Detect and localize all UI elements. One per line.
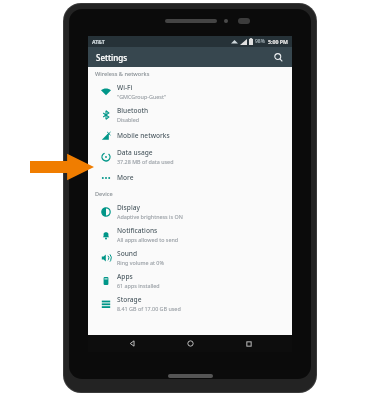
staticText: Bluetooth <box>117 106 149 115</box>
button[interactable]: Mobile networks <box>88 126 292 145</box>
staticText: Notifications <box>117 226 158 235</box>
button[interactable]: Recent apps <box>234 335 264 352</box>
button[interactable]: Sound <box>88 246 292 269</box>
button[interactable]: Storage <box>88 292 292 315</box>
button[interactable]: Apps <box>88 269 292 292</box>
staticText: "GMCGroup-Guest" <box>117 93 167 100</box>
staticText: Settings <box>96 52 128 63</box>
staticText: Data usage <box>117 148 153 157</box>
button[interactable]: Display <box>88 200 292 223</box>
staticText: Apps <box>117 272 133 281</box>
staticText: 61 apps installed <box>117 282 160 289</box>
staticText: Disabled <box>117 116 139 123</box>
staticText: Mobile networks <box>117 131 170 140</box>
staticText: 98% <box>255 38 265 45</box>
button[interactable]: Notifications <box>88 223 292 246</box>
button[interactable]: Data usage <box>88 145 292 168</box>
button[interactable]: Back <box>117 335 147 352</box>
staticText: 5:00 PM <box>268 38 288 45</box>
staticText: All apps allowed to send <box>117 236 179 243</box>
staticText: Sound <box>117 249 138 258</box>
staticText: Wireless & networks <box>95 70 150 78</box>
staticText: 8.41 GB of 17.00 GB used <box>117 305 181 312</box>
staticText: Display <box>117 203 140 212</box>
staticText: Adaptive brightness is ON <box>117 213 183 220</box>
button[interactable]: More <box>88 168 292 187</box>
staticText: Storage <box>117 295 142 304</box>
staticText: Device <box>95 190 113 198</box>
button[interactable]: Search <box>271 50 285 64</box>
button[interactable]: Home <box>175 335 205 352</box>
staticText: More <box>117 173 134 182</box>
button[interactable]: Bluetooth <box>88 103 292 126</box>
staticText: Ring volume at 0% <box>117 259 164 266</box>
button[interactable]: Wi-Fi <box>88 80 292 103</box>
staticText: 37.28 MB of data used <box>117 158 174 165</box>
staticText: Wi-Fi <box>117 83 133 92</box>
staticText: AT&T <box>92 38 105 45</box>
